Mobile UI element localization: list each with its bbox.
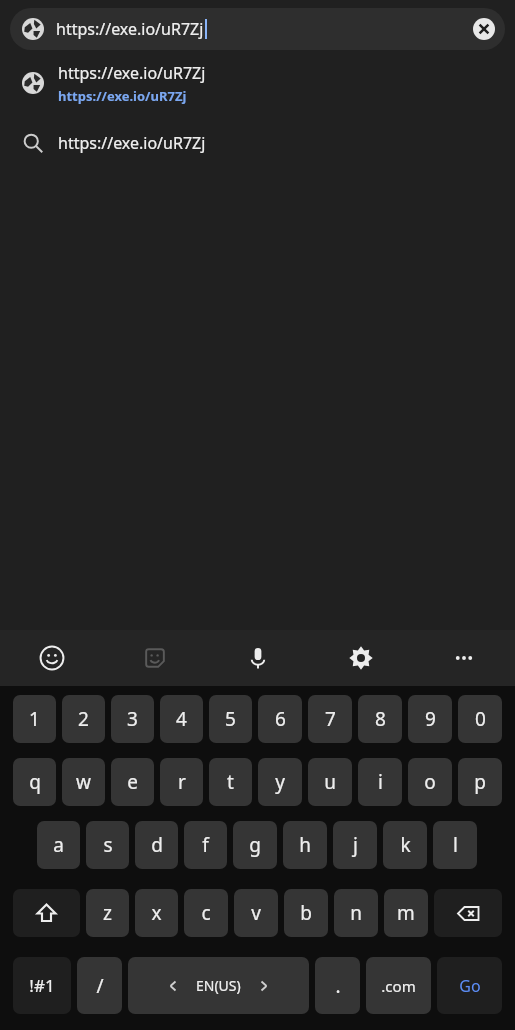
button[interactable]: 0 [458,695,502,743]
staticText: 9 [425,706,436,732]
staticText: f [202,832,209,858]
button[interactable]: 2 [62,695,105,743]
staticText: i [378,769,383,795]
button[interactable]: t [209,758,252,806]
staticText: .com [381,976,416,996]
staticText: e [127,769,138,795]
staticText: 3 [127,706,138,732]
button[interactable]: e [111,758,154,806]
button[interactable]: a [37,821,80,869]
button[interactable]: l [433,821,477,869]
staticText: b [300,900,312,926]
button[interactable]: 3 [111,695,154,743]
staticText: u [324,769,336,795]
button[interactable]: Clear [463,8,505,50]
button[interactable]: d [135,821,178,869]
staticText: m [397,900,415,926]
staticText: o [424,769,436,795]
button[interactable]: o [408,758,452,806]
staticText: 6 [275,706,286,732]
button[interactable]: v [234,889,278,937]
button[interactable]: https://exe.io/uR7Zj [0,50,515,116]
staticText: https://exe.io/uR7Zj [58,87,187,105]
button[interactable]: u [308,758,352,806]
button[interactable]: https://exe.io/uR7Zj [10,8,505,50]
staticText: k [400,832,411,858]
button[interactable]: More options [412,630,515,686]
staticText: x [151,900,162,926]
staticText: v [251,900,261,926]
button[interactable]: !#1 [13,957,71,1014]
staticText: z [103,900,112,926]
staticText: https://exe.io/uR7Zj [56,18,204,40]
button[interactable]: y [258,758,302,806]
button[interactable]: x [135,889,178,937]
staticText: EN(US) [196,976,241,995]
button[interactable]: Emoji [0,630,103,686]
staticText: . [335,973,341,999]
button[interactable]: h [283,821,327,869]
staticText: 1 [29,706,40,732]
button[interactable]: g [233,821,277,869]
button[interactable]: p [458,758,502,806]
button[interactable]: c [184,889,228,937]
staticText: p [474,769,486,795]
staticText: d [151,832,163,858]
button[interactable]: https://exe.io/uR7Zj [0,116,515,170]
button[interactable]: Backspace [434,889,502,937]
button[interactable]: Settings [309,630,412,686]
staticText: / [96,973,104,999]
button[interactable]: q [13,758,56,806]
button[interactable]: w [62,758,105,806]
button[interactable]: k [383,821,427,869]
button[interactable]: r [160,758,203,806]
staticText: 8 [375,706,386,732]
staticText: a [53,832,64,858]
button[interactable]: s [86,821,129,869]
button[interactable]: 1 [13,695,56,743]
button[interactable]: 6 [258,695,302,743]
staticText: r [178,769,186,795]
button[interactable]: 9 [408,695,452,743]
button[interactable]: 8 [358,695,402,743]
button[interactable]: Go [437,957,502,1014]
staticText: https://exe.io/uR7Zj [58,62,206,84]
staticText: q [29,769,41,795]
button[interactable]: 5 [209,695,252,743]
staticText: 2 [78,706,89,732]
button[interactable]: m [384,889,428,937]
staticText: g [249,832,261,858]
staticText: l [453,832,458,858]
button[interactable]: Stickers [103,630,206,686]
button[interactable]: / [77,957,122,1014]
button[interactable]: 7 [308,695,352,743]
staticText: j [353,832,358,858]
button[interactable]: j [333,821,377,869]
button[interactable]: . [315,957,360,1014]
staticText: h [299,832,311,858]
staticText: 4 [176,706,187,732]
button[interactable]: b [284,889,328,937]
staticText: y [275,769,285,795]
staticText: 7 [325,706,336,732]
button[interactable]: f [184,821,227,869]
staticText: n [350,900,362,926]
staticText: https://exe.io/uR7Zj [58,132,206,154]
staticText: 0 [475,706,486,732]
button[interactable]: .com [366,957,431,1014]
button[interactable]: 4 [160,695,203,743]
button[interactable]: Voice input [206,630,309,686]
staticText: s [103,832,113,858]
staticText: Go [459,975,481,997]
button[interactable]: EN(US) [128,957,309,1014]
button[interactable]: n [334,889,378,937]
staticText: 5 [225,706,236,732]
button[interactable]: z [86,889,129,937]
staticText: !#1 [29,974,55,997]
staticText: c [201,900,211,926]
button[interactable]: Shift [13,889,80,937]
button[interactable]: i [358,758,402,806]
staticText: w [76,769,91,795]
staticText: t [227,769,234,795]
